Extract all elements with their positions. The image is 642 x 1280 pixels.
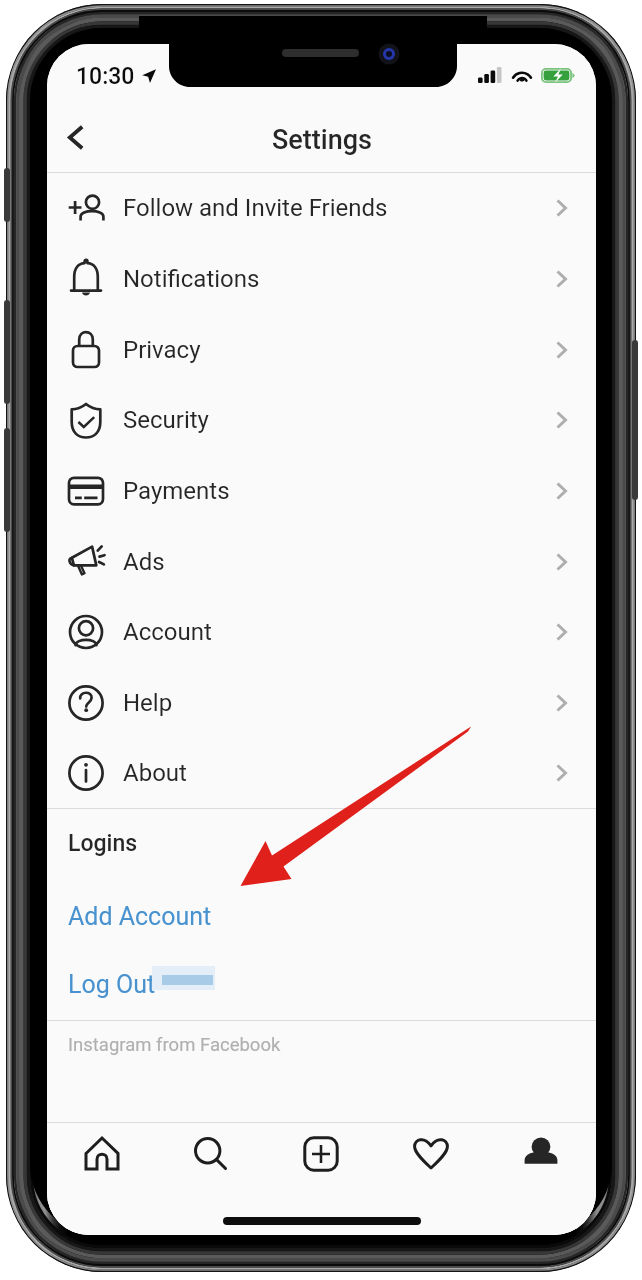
staticText: Security: [123, 406, 544, 434]
button[interactable]: Log Out: [47, 936, 596, 1020]
button[interactable]: Profile: [486, 1123, 596, 1185]
button[interactable]: Add Account: [47, 867, 596, 936]
staticText: Log Out: [68, 970, 156, 999]
staticText: Add Account: [68, 902, 212, 931]
staticText: Account: [123, 618, 544, 646]
staticText: Instagram from Facebook: [68, 1034, 281, 1056]
button[interactable]: Follow and Invite Friends: [47, 173, 596, 243]
staticText: Settings: [272, 124, 372, 156]
staticText: Notifications: [123, 265, 544, 293]
button[interactable]: New post: [266, 1123, 376, 1185]
button[interactable]: Security: [47, 385, 596, 455]
button[interactable]: Search: [156, 1123, 266, 1185]
button[interactable]: Payments: [47, 455, 596, 526]
staticText: 10:30: [76, 63, 135, 90]
staticText: Privacy: [123, 336, 544, 364]
button[interactable]: About: [47, 738, 596, 808]
staticText: Ads: [123, 548, 544, 576]
button[interactable]: Ads: [47, 526, 596, 597]
staticText: Payments: [123, 477, 544, 505]
staticText: Logins: [68, 830, 138, 857]
button[interactable]: Account: [47, 597, 596, 667]
button[interactable]: Home: [47, 1123, 156, 1185]
staticText: Help: [123, 689, 544, 717]
button[interactable]: Back: [51, 114, 99, 166]
button[interactable]: Help: [47, 667, 596, 738]
staticText: Follow and Invite Friends: [123, 194, 544, 222]
button[interactable]: Activity: [376, 1123, 486, 1185]
button[interactable]: Notifications: [47, 243, 596, 314]
staticText: About: [123, 759, 544, 787]
button[interactable]: Privacy: [47, 314, 596, 385]
